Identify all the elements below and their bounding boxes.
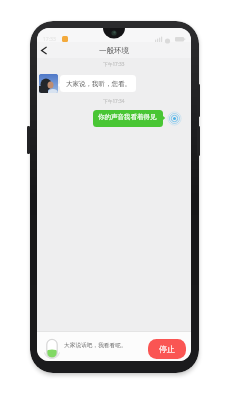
button[interactable]: 大家说话吧，我看看呢。 (41, 334, 141, 360)
button[interactable]: 停止 (148, 339, 186, 359)
staticText: 停止 (159, 344, 175, 354)
staticText: 17:33 (43, 36, 56, 43)
staticText: 大家说话吧，我看看呢。 (64, 342, 127, 349)
button[interactable]: 你的声音我看着得见 (93, 110, 163, 127)
staticText: 下午17:34 (103, 98, 125, 104)
staticText: 你的声音我看着得见 (98, 113, 157, 121)
staticText: 下午17:33 (103, 61, 125, 67)
button[interactable] (37, 43, 55, 58)
staticText: 大家说，我听，您看。 (66, 80, 131, 88)
button[interactable]: 大家说，我听，您看。 (60, 75, 136, 92)
staticText: 一般环境 (99, 46, 129, 55)
